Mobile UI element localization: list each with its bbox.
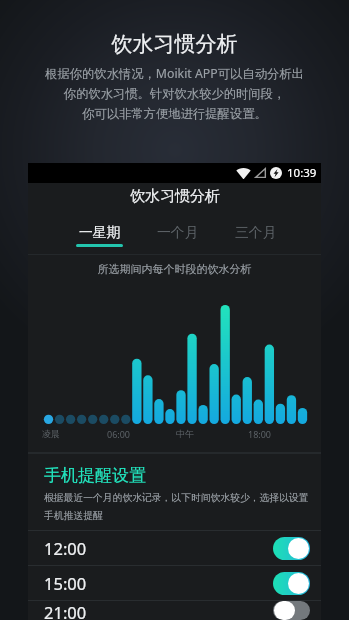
staticText: 所选期间内每个时段的饮水分析 [28, 262, 321, 276]
button[interactable]: 三个月 [216, 210, 294, 254]
other: Signal [255, 168, 266, 178]
staticText: 手机提醒设置 [44, 465, 146, 486]
staticText: 根据你的饮水情况，Moikit APP可以自动分析出 你的饮水习惯。针对饮水较少… [0, 65, 349, 121]
staticText: 中午 [176, 428, 194, 439]
staticText: 21:00 [44, 601, 87, 620]
button[interactable]: 一个月 [138, 210, 216, 254]
other: Battery charging [270, 167, 282, 179]
other: Wi-Fi [236, 167, 251, 179]
staticText: 饮水习惯分析 [0, 31, 349, 57]
staticText: 一个月 [157, 224, 199, 241]
staticText: 一星期 [79, 224, 121, 241]
staticText: 12:00 [44, 537, 87, 559]
button[interactable]: 一星期 [60, 210, 138, 254]
staticText: 06:00 [107, 428, 131, 440]
staticText: 三个月 [235, 224, 277, 241]
staticText: 18:00 [248, 428, 272, 440]
staticText: 饮水习惯分析 [130, 187, 220, 206]
staticText: 根据最近一个月的饮水记录，以下时间饮水较少，选择以设置 手机推送提醒 [44, 492, 309, 522]
staticText: 凌晨 [42, 428, 60, 439]
button[interactable]: 12:00 [28, 531, 321, 565]
staticText: 15:00 [44, 572, 87, 594]
button[interactable]: 15:00 [28, 566, 321, 600]
staticText: 10:39 [287, 165, 317, 181]
button[interactable]: 21:00 [28, 601, 321, 620]
